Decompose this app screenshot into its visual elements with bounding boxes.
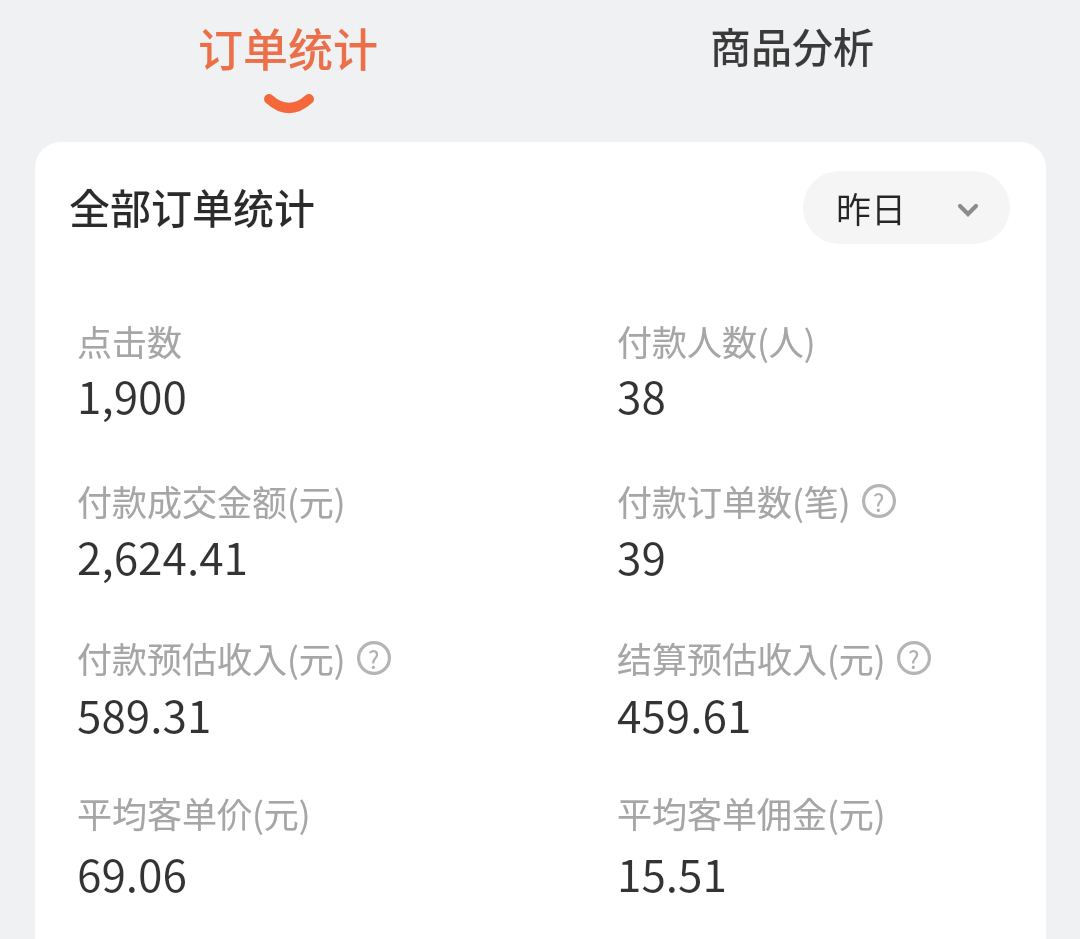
staticText: 付款成交金额(元) bbox=[77, 475, 346, 526]
staticText: ? bbox=[908, 641, 920, 675]
staticText: 订单统计 bbox=[198, 15, 379, 80]
staticText: 付款人数(人) bbox=[617, 315, 816, 366]
staticText: 点击数 bbox=[77, 315, 183, 366]
staticText: 69.06 bbox=[77, 841, 187, 905]
button[interactable]: 商品分析 bbox=[522, 0, 1062, 142]
staticText: 2,624.41 bbox=[77, 524, 248, 588]
staticText: 459.61 bbox=[617, 682, 752, 746]
staticText: 平均客单佣金(元) bbox=[617, 787, 886, 838]
staticText: 昨日 bbox=[836, 182, 907, 233]
staticText: 付款订单数(笔) bbox=[617, 475, 851, 526]
staticText: ? bbox=[873, 484, 885, 518]
button[interactable]: More information bbox=[862, 484, 896, 518]
staticText: 全部订单统计 bbox=[69, 176, 315, 235]
staticText: 38 bbox=[617, 363, 666, 427]
staticText: 结算预估收入(元) bbox=[617, 632, 886, 683]
button[interactable]: 昨日 bbox=[803, 171, 1010, 244]
staticText: 商品分析 bbox=[710, 15, 874, 74]
staticText: 15.51 bbox=[617, 841, 727, 905]
button[interactable]: More information bbox=[357, 641, 391, 675]
button[interactable]: 订单统计 bbox=[18, 0, 558, 142]
staticText: 39 bbox=[617, 524, 666, 588]
staticText: 589.31 bbox=[77, 682, 212, 746]
staticText: 1,900 bbox=[77, 363, 187, 427]
staticText: 付款预估收入(元) bbox=[77, 632, 346, 683]
staticText: ? bbox=[368, 641, 380, 675]
staticText: 平均客单价(元) bbox=[77, 787, 311, 838]
button[interactable]: More information bbox=[897, 641, 931, 675]
